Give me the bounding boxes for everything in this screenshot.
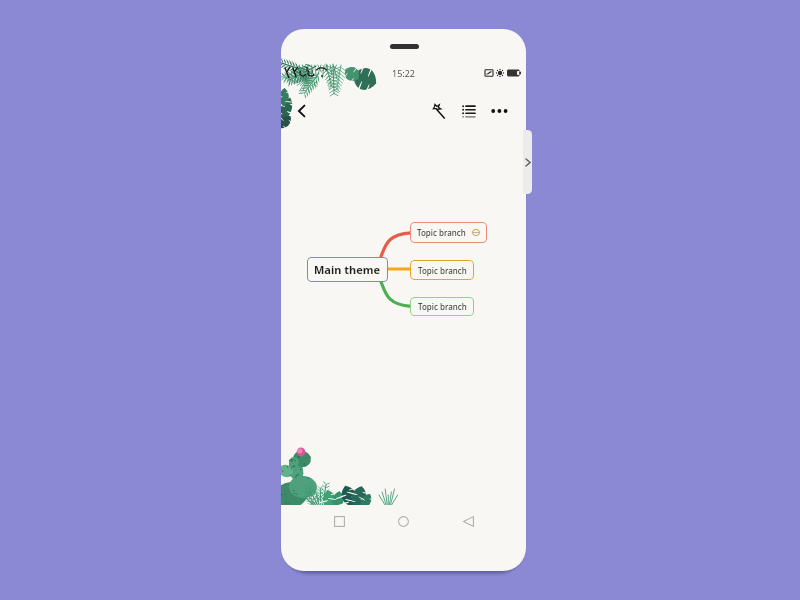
button[interactable]: Topic branch [410,222,487,243]
button[interactable]: Open side panel [523,130,532,194]
button[interactable]: Back [288,99,314,123]
button[interactable]: Recents [326,508,352,534]
button[interactable]: Main theme [307,257,388,282]
button[interactable]: More options [486,99,512,123]
button[interactable]: Topic branch [410,260,474,280]
staticText: 15:22 [392,67,416,79]
button[interactable]: Back [455,508,481,534]
staticText: Topic branch [417,227,466,238]
button[interactable]: Outline view [455,99,481,123]
button[interactable]: Magic style [424,99,450,123]
staticText: Main theme [314,262,381,277]
staticText: Topic branch [418,301,467,312]
staticText: Topic branch [418,265,467,276]
button[interactable]: Topic branch [410,297,474,316]
button[interactable]: Home [390,508,416,534]
